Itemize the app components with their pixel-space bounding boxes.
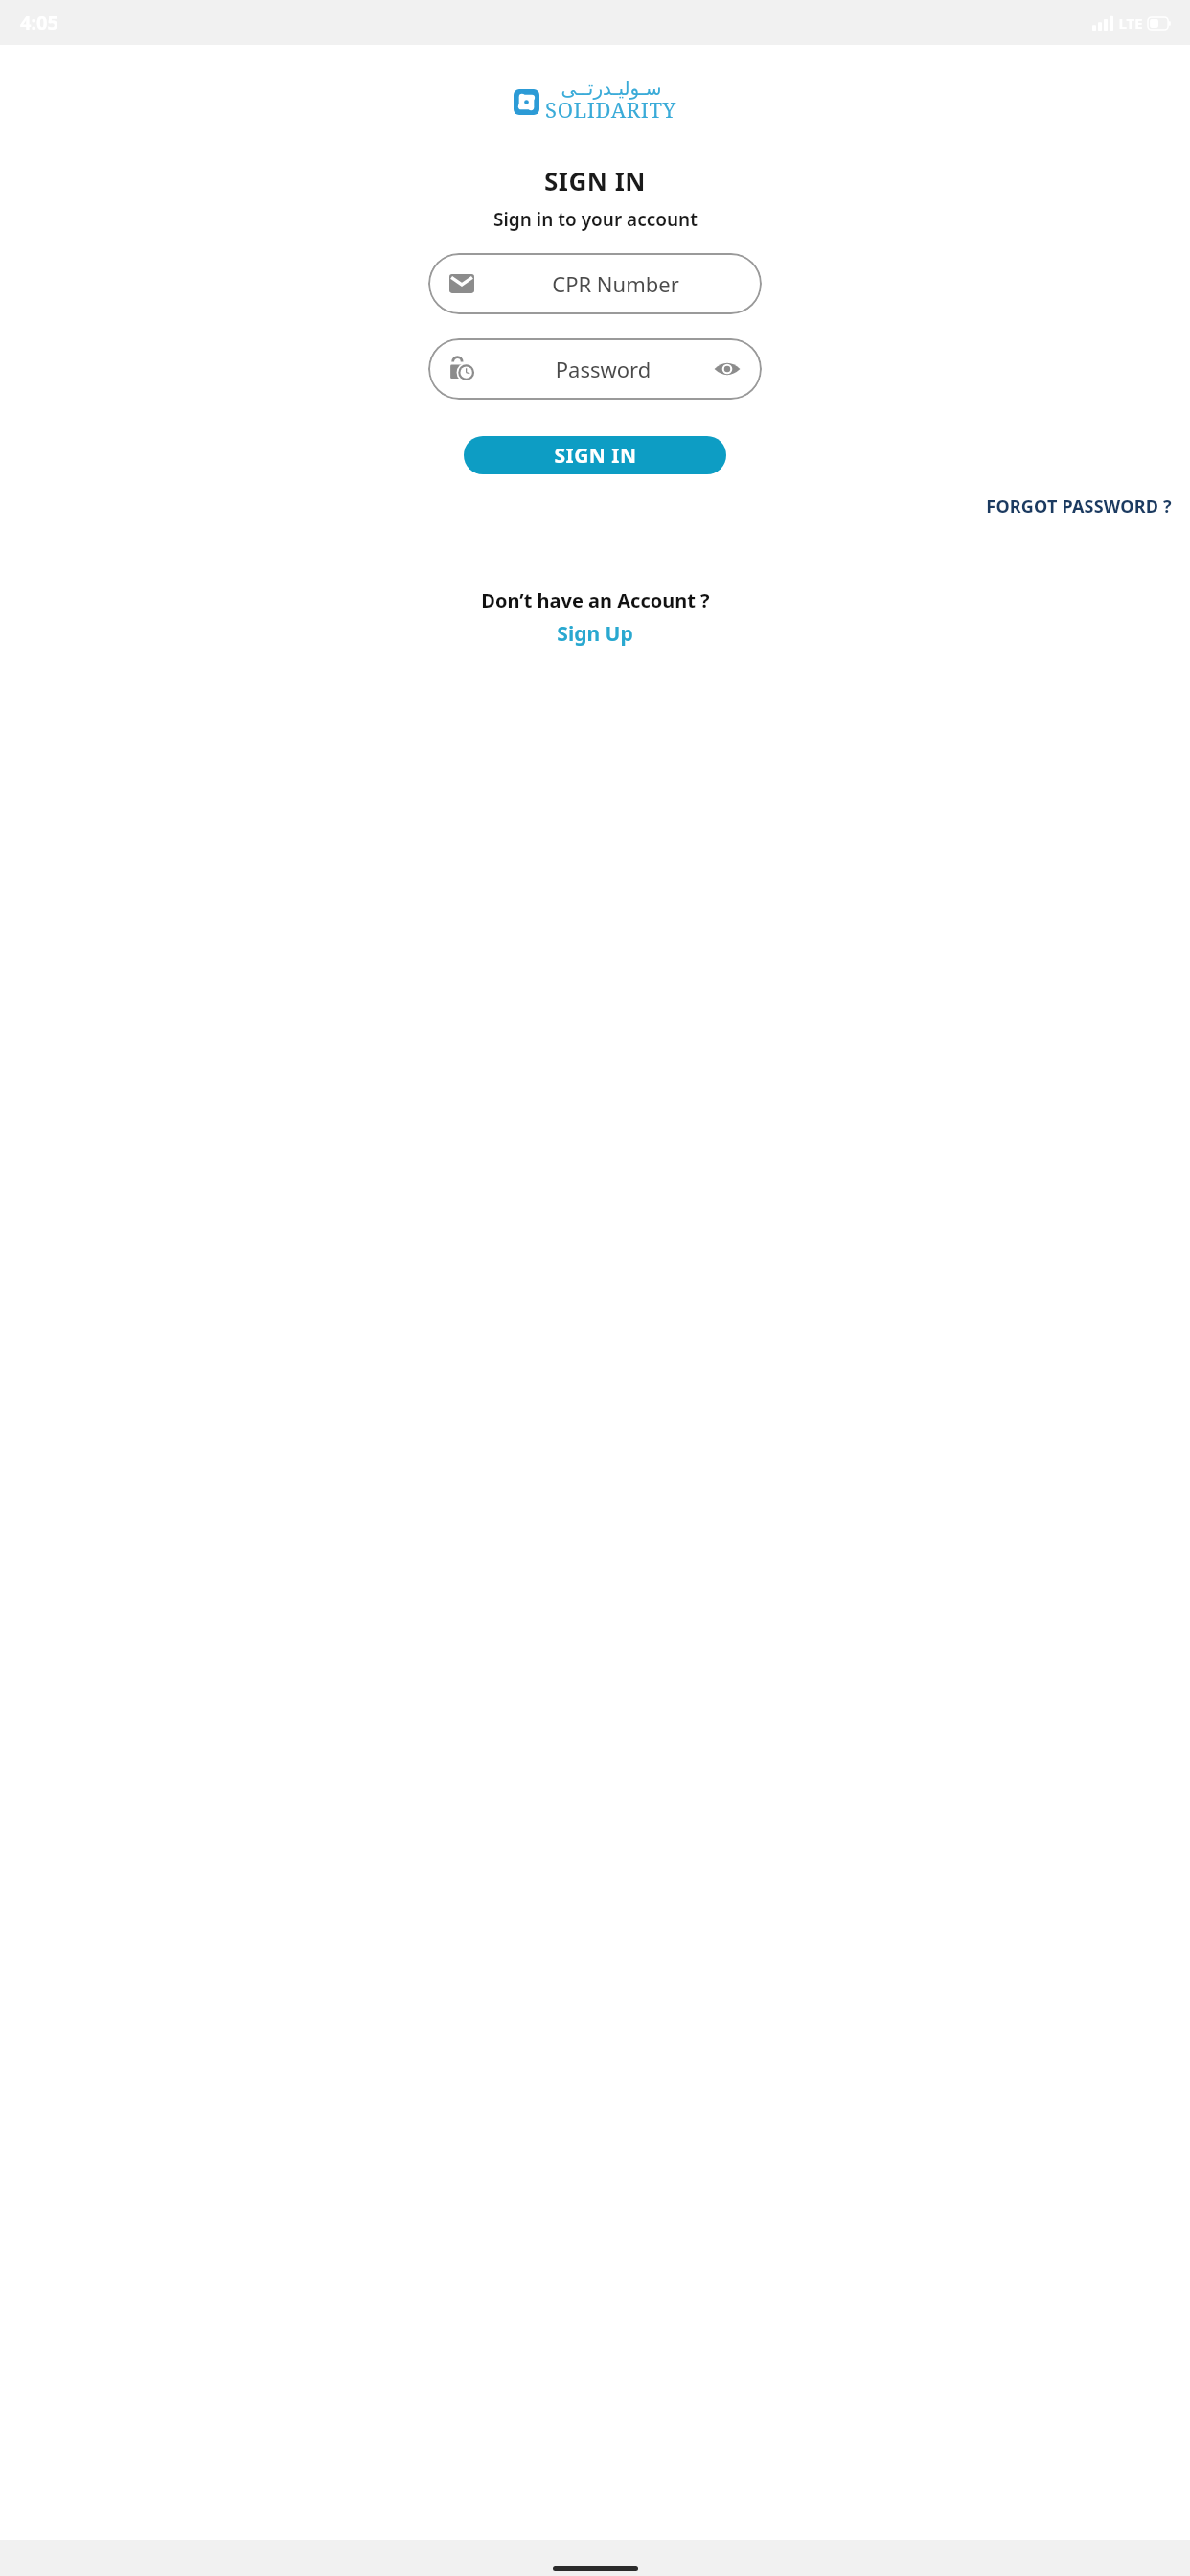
other: Email — [449, 271, 474, 296]
staticText: LTE — [1118, 13, 1143, 33]
button[interactable]: Show password — [714, 356, 741, 382]
staticText: 4:05 — [20, 10, 58, 35]
staticText: FORGOT PASSWORD ? — [986, 494, 1172, 518]
staticText: Sign in to your account — [493, 207, 698, 232]
staticText: سـولیـدرتــی — [561, 77, 662, 99]
staticText: Sign Up — [557, 620, 633, 648]
staticText: SIGN IN — [554, 442, 637, 470]
staticText: SIGN IN — [544, 164, 646, 197]
button[interactable]: SIGN IN — [464, 436, 726, 474]
other: Password — [449, 356, 476, 382]
staticText: Password — [492, 355, 714, 383]
staticText: Don’t have an Account ? — [481, 587, 710, 613]
button[interactable]: FORGOT PASSWORD ? — [986, 494, 1190, 518]
button[interactable]: Password — [428, 338, 762, 400]
button[interactable]: Sign Up — [551, 618, 639, 650]
button[interactable]: Email — [428, 253, 762, 314]
staticText: CPR Number — [491, 269, 741, 298]
staticText: SOLIDARITY — [545, 95, 676, 124]
